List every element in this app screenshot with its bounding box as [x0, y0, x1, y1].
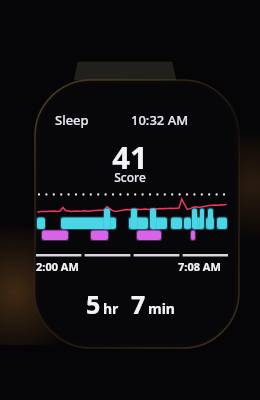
staticText: hr: [103, 299, 119, 318]
staticText: 41: [112, 136, 148, 178]
staticText: 2:00 AM: [36, 259, 79, 274]
staticText: min: [148, 299, 175, 318]
button[interactable]: 5: [60, 288, 205, 320]
button[interactable]: Sleep stages chart: [34, 190, 230, 242]
staticText: 10:32 AM: [131, 111, 189, 129]
staticText: 7:08 AM: [178, 259, 221, 274]
staticText: 5: [86, 287, 101, 319]
staticText: 7: [131, 287, 146, 319]
staticText: Score: [114, 169, 146, 185]
button[interactable]: Sleep: [55, 111, 89, 129]
button[interactable]: 41: [80, 136, 180, 182]
